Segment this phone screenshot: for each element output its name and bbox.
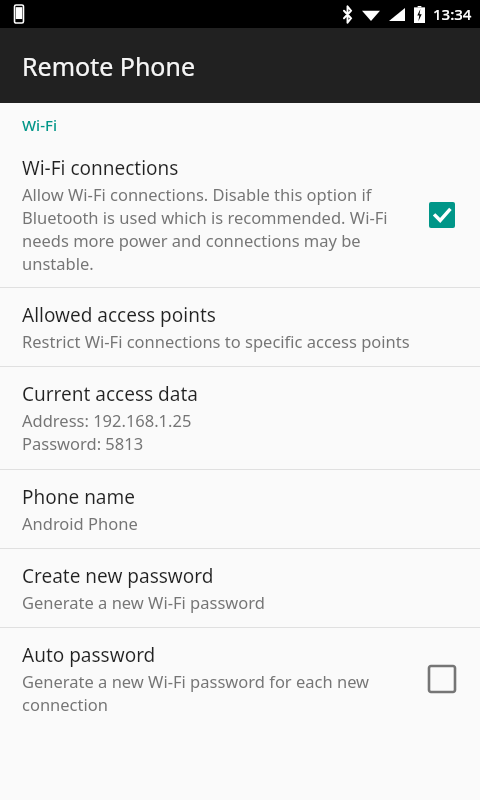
button[interactable]: Checked bbox=[420, 193, 464, 237]
staticText: Allowed access points bbox=[22, 302, 216, 328]
button[interactable]: Unchecked bbox=[420, 657, 464, 701]
button[interactable]: Phone name bbox=[0, 470, 480, 548]
staticText: Wi-Fi bbox=[22, 115, 57, 135]
button[interactable]: Allowed access points bbox=[0, 288, 480, 366]
staticText: Allow Wi-Fi connections. Disable this op… bbox=[22, 183, 410, 275]
staticText: Wi-Fi connections bbox=[22, 155, 179, 181]
staticText: Address: 192.168.1.25 Password: 5813 bbox=[22, 409, 192, 455]
staticText: Phone name bbox=[22, 484, 136, 510]
button[interactable]: Create new password bbox=[0, 549, 480, 627]
staticText: 13:34 bbox=[433, 4, 472, 24]
staticText: Generate a new Wi-Fi password bbox=[22, 591, 265, 613]
staticText: Current access data bbox=[22, 381, 198, 407]
button[interactable]: Current access data bbox=[0, 367, 480, 469]
staticText: Restrict Wi-Fi connections to specific a… bbox=[22, 330, 410, 352]
staticText: Create new password bbox=[22, 563, 214, 589]
button[interactable]: Auto password bbox=[0, 628, 480, 730]
staticText: Android Phone bbox=[22, 512, 138, 534]
staticText: Remote Phone bbox=[22, 49, 196, 83]
button[interactable]: Wi-Fi connections bbox=[0, 145, 480, 287]
staticText: Generate a new Wi-Fi password for each n… bbox=[22, 670, 410, 716]
staticText: Auto password bbox=[22, 642, 156, 668]
